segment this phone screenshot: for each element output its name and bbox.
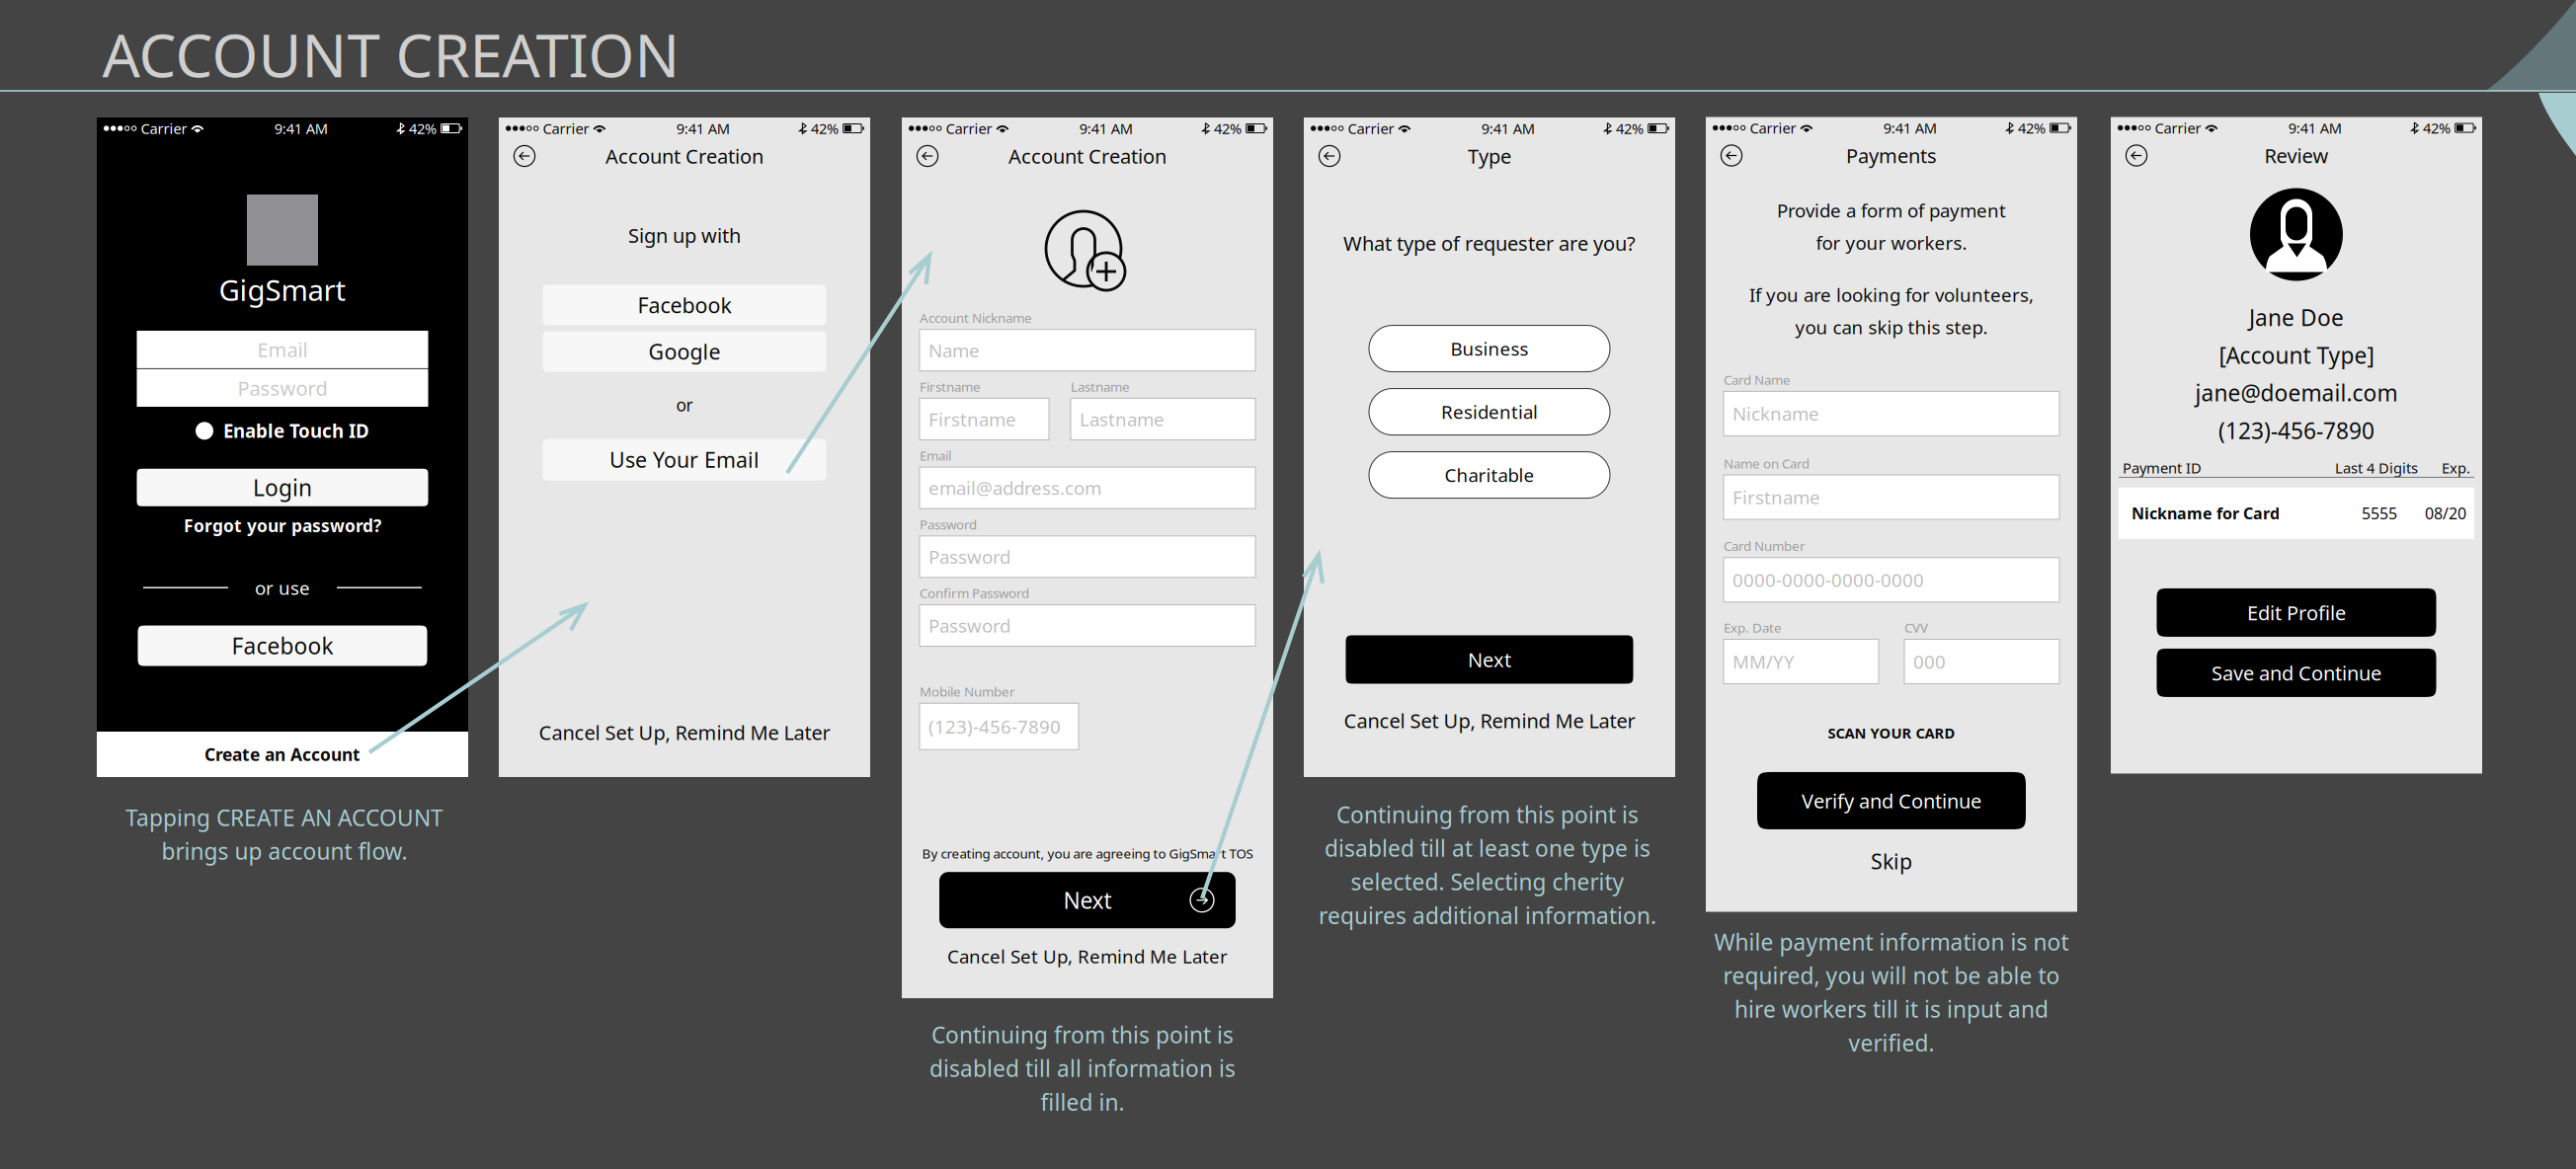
staticText: Lastname [1071,378,1130,395]
button[interactable]: Cancel Set Up, Remind Me Later [943,940,1232,973]
button[interactable]: Residential [1369,389,1610,435]
staticText: brings up account flow. [161,836,407,866]
staticText: Account Creation [605,143,764,169]
button[interactable]: 0000-0000-0000-0000 [1724,558,2059,602]
button[interactable]: Cancel Set Up, Remind Me Later [533,713,836,751]
button[interactable]: Back [1318,144,1341,168]
staticText: SCAN YOUR CARD [1828,723,1955,742]
button[interactable]: Email [137,331,428,368]
staticText: Lastname [1080,407,1165,431]
staticText: [Account Type] [2219,340,2374,370]
staticText: GigSmart [219,271,346,309]
staticText: Facebook [638,291,731,319]
staticText: Cancel Set Up, Remind Me Later [539,719,830,745]
staticText: Carrier [543,119,589,138]
staticText: Mobile Number [920,683,1015,700]
button[interactable]: Next [939,872,1236,928]
button[interactable]: Enable Touch ID [190,413,375,449]
button[interactable]: Firstname [1724,475,2059,519]
button[interactable]: SCAN YOUR CARD [1824,719,1959,746]
staticText: 9:41 AM [676,119,730,138]
button[interactable]: Edit Profile [2157,588,2436,637]
staticText: 9:41 AM [1079,119,1133,138]
staticText: CVV [1904,619,1928,636]
button[interactable]: Create an Account [97,732,468,777]
staticText: disabled till at least one type is [1325,833,1650,863]
staticText: Cancel Set Up, Remind Me Later [1344,707,1635,734]
staticText: (123)-456-7890 [2218,415,2375,445]
button[interactable]: Google [543,331,826,372]
button[interactable]: Back [916,144,939,168]
staticText: Type [1468,143,1511,169]
button[interactable]: Password [920,605,1255,646]
button[interactable]: Skip [1867,843,1916,879]
staticText: requires additional information. [1319,901,1656,930]
staticText: Create an Account [204,743,361,766]
staticText: you can skip this step. [1795,315,1988,339]
staticText: Tapping CREATE AN ACCOUNT [125,803,443,832]
button[interactable]: Password [137,369,428,407]
staticText: ACCOUNT CREATION [102,15,680,94]
button[interactable]: Facebook [138,626,427,666]
staticText: Email [257,336,308,363]
button[interactable]: Back [1720,144,1743,167]
button[interactable]: Name [920,329,1255,371]
staticText: verified. [1849,1028,1934,1058]
button[interactable]: Firstname [920,398,1049,440]
button[interactable]: Save and Continue [2157,649,2436,697]
button[interactable]: Nickname for Card [2119,488,2474,539]
button[interactable]: Cancel Set Up, Remind Me Later [1340,703,1639,738]
staticText: jane@doemail.com [2195,378,2398,408]
staticText: Carrier [2155,118,2201,138]
staticText: Name [928,338,980,362]
staticText: Edit Profile [2247,599,2346,626]
button[interactable]: Forgot your password? [180,510,385,541]
staticText: Email [920,447,951,464]
staticText: Card Number [1724,537,1806,555]
button[interactable]: Login [137,469,428,506]
button[interactable]: Lastname [1071,398,1255,440]
button[interactable]: Use Your Email [543,439,826,480]
button[interactable]: Charitable [1369,452,1610,498]
button[interactable]: Facebook [543,285,826,325]
staticText: 42% [2018,118,2046,138]
staticText: While payment information is not [1714,927,2069,957]
button[interactable]: 000 [1904,639,2059,684]
staticText: Nickname [1732,401,1819,426]
button[interactable]: Next [1346,635,1633,684]
staticText: Carrier [1750,118,1796,138]
staticText: Next [1063,885,1112,915]
staticText: 9:41 AM [2288,118,2342,138]
button[interactable]: Back [2125,144,2148,167]
button[interactable]: Back [513,144,536,168]
staticText: Provide a form of payment [1777,198,2006,222]
button[interactable]: (123)-456-7890 [920,703,1079,750]
staticText: Google [648,338,721,366]
staticText: Continuing from this point is [1336,800,1639,829]
button[interactable]: Nickname [1724,391,2059,436]
staticText: MM/YY [1732,649,1795,674]
button[interactable]: Password [920,536,1255,577]
staticText: Continuing from this point is [931,1020,1234,1049]
staticText: Business [1450,336,1529,361]
button[interactable]: MM/YY [1724,639,1879,684]
staticText: What type of requester are you? [1343,230,1636,256]
staticText: 42% [409,119,437,138]
staticText: 9:41 AM [1883,118,1937,138]
staticText: Use Your Email [609,446,760,474]
staticText: or use [255,575,310,600]
staticText: Card Name [1724,371,1791,388]
staticText: Next [1468,646,1511,673]
button[interactable]: email@address.com [920,467,1255,509]
staticText: Exp. [2442,458,2470,478]
button[interactable]: Verify and Continue [1757,772,2026,829]
staticText: (123)-456-7890 [928,714,1061,739]
staticText: or [676,394,693,416]
staticText: filled in. [1041,1087,1125,1117]
staticText: Skip [1871,847,1912,875]
button[interactable]: Business [1369,325,1610,372]
staticText: 5555 [2362,503,2397,524]
staticText: By creating account, you are agreeing to… [922,845,1253,862]
staticText: Password [920,515,977,533]
staticText: 42% [1616,119,1644,138]
